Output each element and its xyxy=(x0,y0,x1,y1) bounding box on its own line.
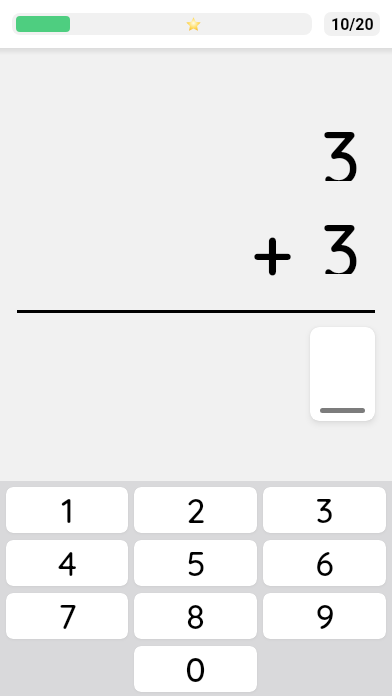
staticText: 9 xyxy=(315,595,335,638)
button[interactable]: Answer field xyxy=(310,327,375,421)
button[interactable]: 7 xyxy=(6,593,128,639)
staticText: 5 xyxy=(186,542,206,585)
staticText: 3 xyxy=(315,489,334,532)
staticText: 6 xyxy=(315,542,334,585)
staticText: 0 xyxy=(185,648,206,691)
staticText: 7 xyxy=(58,595,77,638)
staticText: 8 xyxy=(186,595,205,638)
button[interactable]: 2 xyxy=(134,487,257,533)
button[interactable]: 4 xyxy=(6,540,128,586)
staticText: 3 xyxy=(321,111,361,181)
button[interactable]: 9 xyxy=(263,593,386,639)
staticText: 3 xyxy=(321,204,361,274)
button[interactable]: 8 xyxy=(134,593,257,639)
staticText: 4 xyxy=(58,542,77,585)
button[interactable]: 10/20 xyxy=(324,12,380,36)
staticText: 2 xyxy=(186,489,206,532)
button[interactable]: 1 xyxy=(6,487,128,533)
button[interactable]: 5 xyxy=(134,540,257,586)
button[interactable]: 0 xyxy=(134,646,257,692)
button[interactable]: 3 xyxy=(263,487,386,533)
button[interactable]: 6 xyxy=(263,540,386,586)
staticText: + xyxy=(251,208,294,278)
staticText: 1 xyxy=(61,489,74,532)
staticText: 10/20 xyxy=(331,15,374,34)
